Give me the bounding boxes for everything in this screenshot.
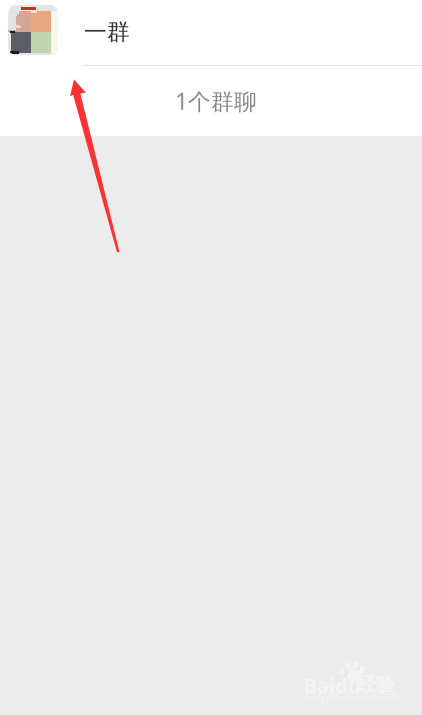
- staticText: 经验: [357, 673, 395, 696]
- button[interactable]: 一群: [0, 0, 422, 65]
- button[interactable]: 1个群聊: [0, 66, 422, 136]
- staticText: 1个群聊: [175, 86, 257, 116]
- staticText: jingyan.baidu.com: [305, 688, 400, 702]
- staticText: 一群: [84, 18, 130, 46]
- staticText: Baidu: [304, 672, 361, 699]
